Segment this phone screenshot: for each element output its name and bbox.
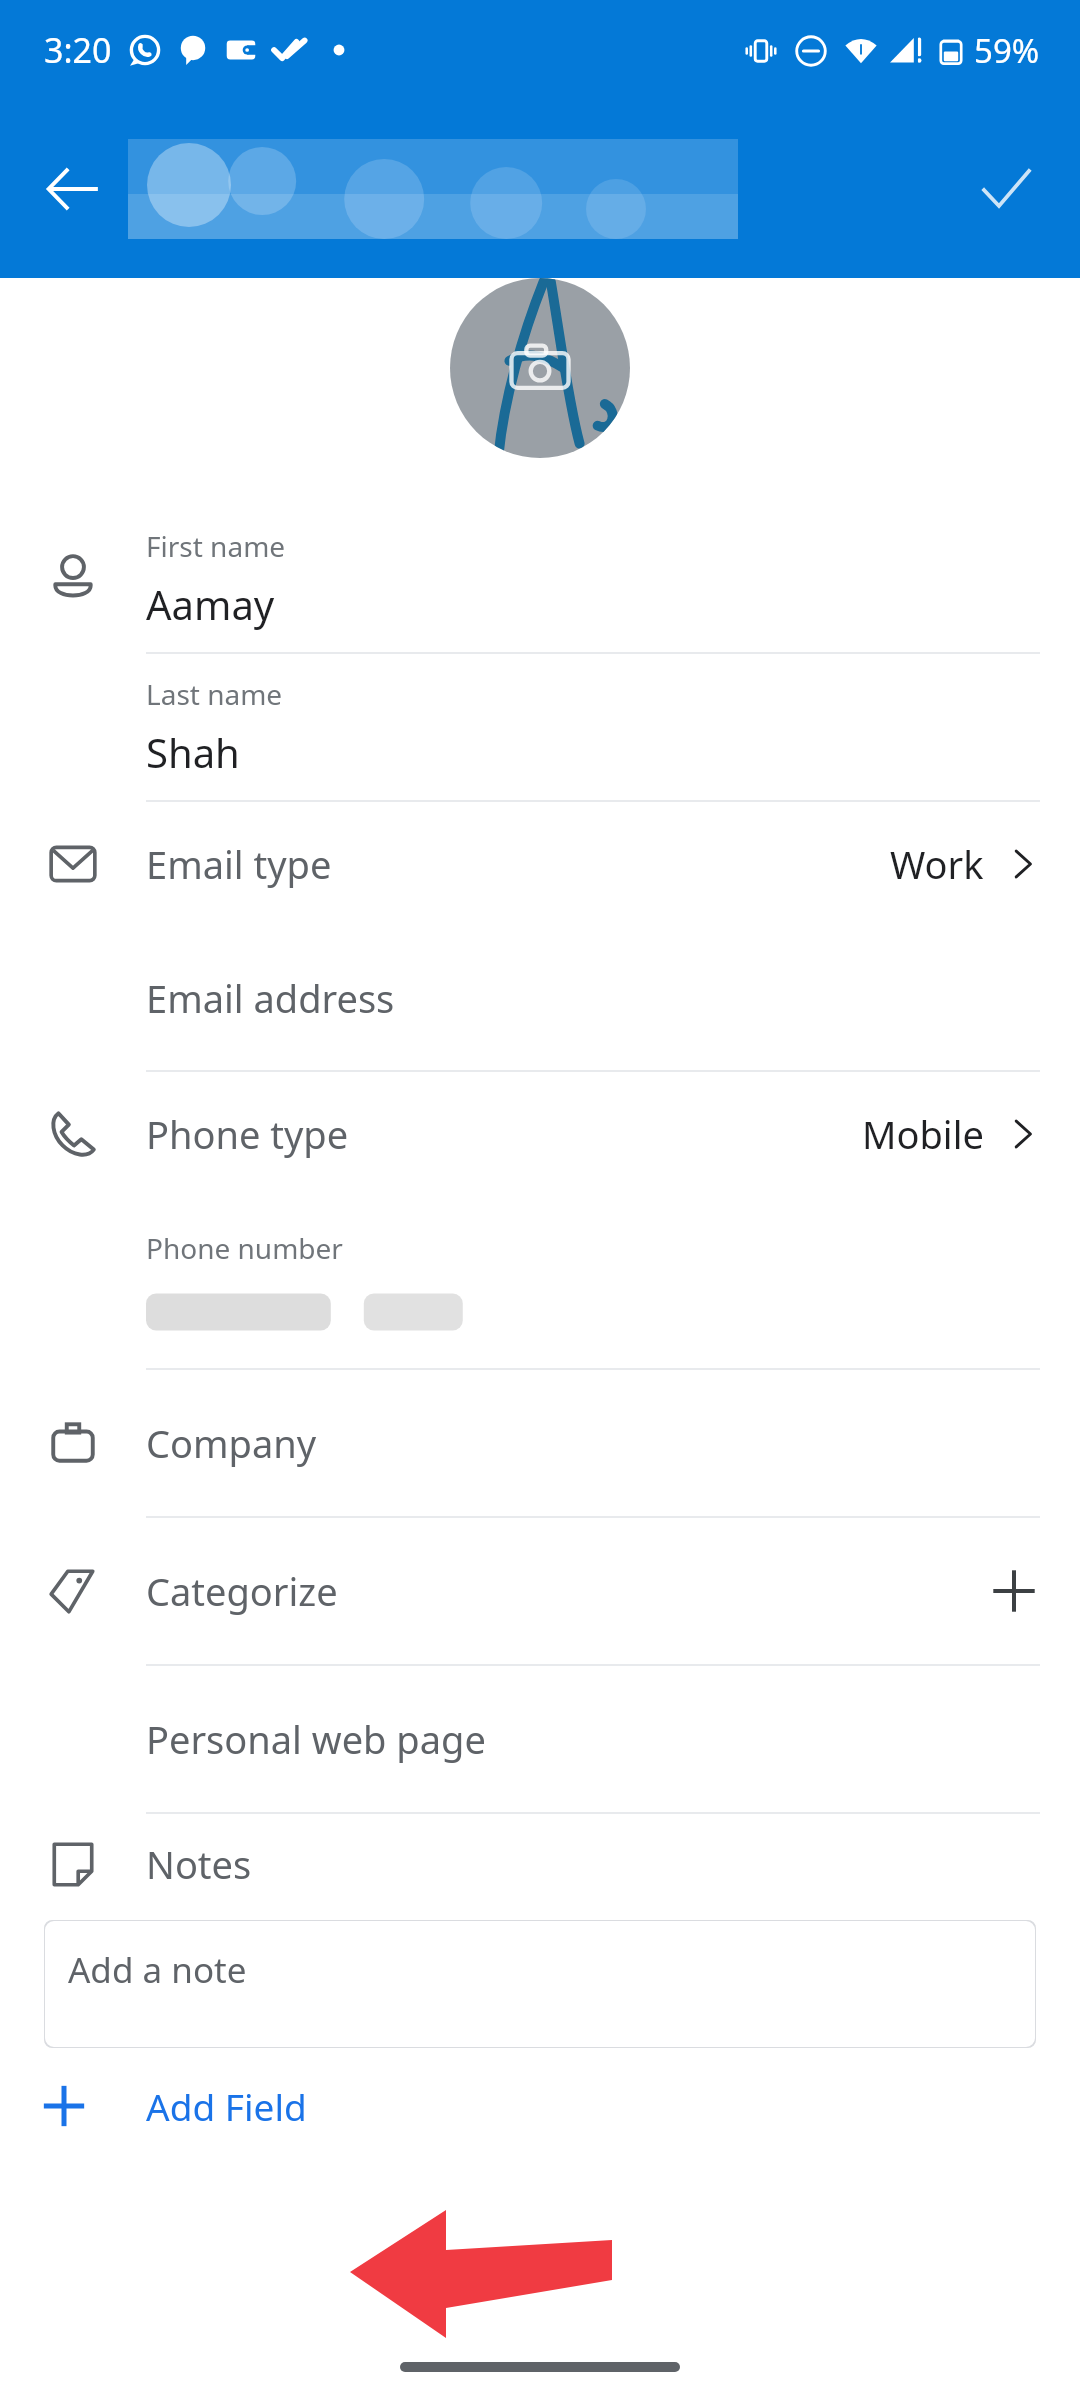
button[interactable]: Save <box>958 141 1054 237</box>
button[interactable]: Add a note <box>44 1920 1036 2048</box>
staticText: Phone type <box>146 1108 349 1160</box>
button[interactable]: Personal web page <box>0 1666 1080 1812</box>
button[interactable]: Last name <box>0 654 1080 800</box>
button[interactable]: Phone <box>0 1072 1080 1196</box>
staticText: First name <box>146 527 286 565</box>
button[interactable] <box>128 139 738 239</box>
staticText: Aamay <box>146 577 275 631</box>
button[interactable]: Company <box>0 1370 1080 1516</box>
staticText: Categorize <box>146 1565 338 1617</box>
staticText: Email type <box>146 838 332 890</box>
button[interactable]: Notes <box>0 1814 1080 1914</box>
staticText: Notes <box>146 1838 252 1890</box>
other: Email <box>47 838 99 890</box>
staticText: Email address <box>146 972 395 1024</box>
staticText: 3:20 <box>44 27 112 73</box>
button[interactable]: Name <box>0 506 1080 652</box>
button[interactable]: Add Field <box>0 2048 1080 2164</box>
other: Categorize <box>47 1565 99 1617</box>
other: Phone <box>47 1108 99 1160</box>
staticText: Company <box>146 1417 317 1469</box>
other: Company <box>47 1417 99 1469</box>
other: Name <box>47 553 99 605</box>
staticText: Shah <box>146 725 240 779</box>
staticText: Mobile <box>862 1108 984 1160</box>
staticText: 59% <box>974 28 1040 73</box>
other: Notes <box>47 1838 99 1890</box>
button[interactable]: Email <box>0 802 1080 926</box>
staticText: Phone number <box>146 1229 343 1267</box>
staticText: Add a note <box>68 1946 247 1994</box>
button[interactable]: Phone number <box>0 1196 1080 1368</box>
staticText: Personal web page <box>146 1713 486 1765</box>
button[interactable]: Add category <box>974 1551 1054 1631</box>
staticText: Add Field <box>146 2081 307 2131</box>
button[interactable]: Back <box>24 141 120 237</box>
staticText: Work <box>890 838 984 890</box>
button[interactable]: Change photo <box>450 278 630 458</box>
button[interactable]: Categorize <box>0 1518 1080 1664</box>
staticText: Last name <box>146 675 283 713</box>
button[interactable]: Email address <box>0 926 1080 1070</box>
